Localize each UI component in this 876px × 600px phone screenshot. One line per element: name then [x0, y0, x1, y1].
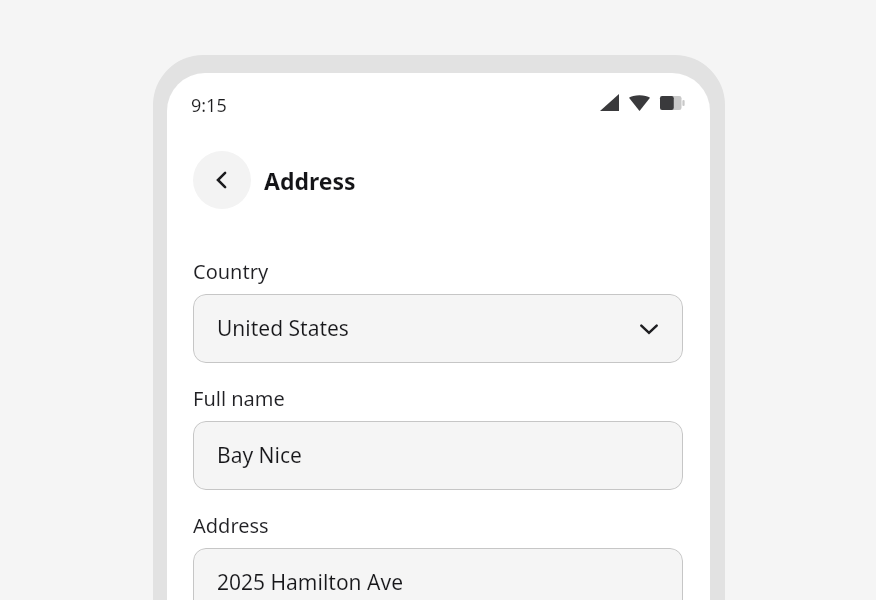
staticText: Full name: [193, 385, 285, 412]
staticText: 9:15: [191, 93, 227, 118]
staticText: Country: [193, 258, 269, 285]
button[interactable]: 2025 Hamilton Ave: [193, 548, 683, 600]
staticText: Bay Nice: [217, 441, 661, 470]
button[interactable]: United States: [193, 294, 683, 363]
staticText: 2025 Hamilton Ave: [217, 568, 661, 597]
staticText: United States: [217, 314, 637, 343]
staticText: Address: [193, 512, 269, 539]
button[interactable]: Back: [193, 151, 251, 209]
staticText: Address: [264, 165, 356, 196]
button[interactable]: Bay Nice: [193, 421, 683, 490]
